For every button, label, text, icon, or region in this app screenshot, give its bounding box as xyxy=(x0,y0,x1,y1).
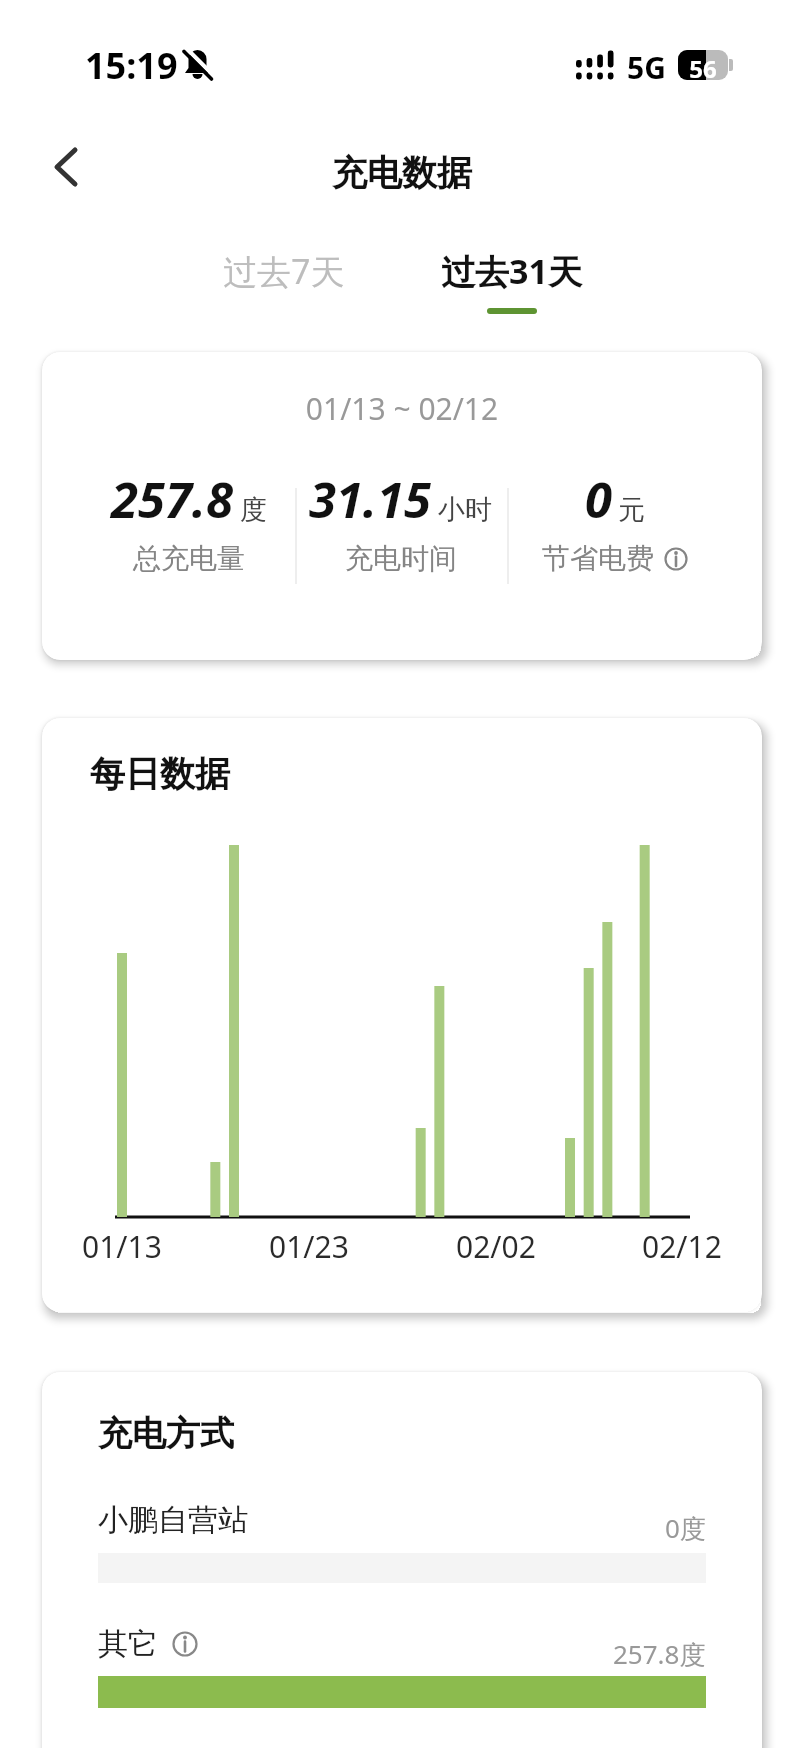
staticText: 度 xyxy=(240,493,267,527)
staticText: 元 xyxy=(618,493,645,527)
staticText: 小时 xyxy=(438,493,492,527)
staticText: 01/13 ~ 02/12 xyxy=(42,388,762,429)
staticText: 过去7天 xyxy=(223,248,345,294)
button[interactable]: 过去31天 xyxy=(441,248,582,314)
staticText: 31.15 xyxy=(309,466,432,533)
staticText: 充电时间 xyxy=(345,541,457,576)
staticText: 02/12 xyxy=(642,1226,722,1267)
staticText: 15:19 xyxy=(85,41,178,90)
button[interactable] xyxy=(664,547,688,571)
staticText: 小鹏自营站 xyxy=(98,1501,248,1539)
staticText: 充电数据 xyxy=(0,151,804,195)
staticText: 充电方式 xyxy=(98,1412,234,1455)
staticText: 节省电费 xyxy=(542,541,654,576)
button[interactable] xyxy=(172,1631,198,1657)
button[interactable] xyxy=(38,134,94,200)
staticText: 257.8 xyxy=(111,466,234,533)
staticText: 01/13 xyxy=(82,1226,162,1267)
staticText: 257.8度 xyxy=(613,1636,706,1672)
staticText: 02/02 xyxy=(456,1226,536,1267)
staticText: 01/23 xyxy=(269,1226,349,1267)
staticText: 0 xyxy=(585,466,612,533)
button[interactable]: 过去7天 xyxy=(223,248,345,294)
staticText: 5G xyxy=(627,47,666,88)
staticText: 56 xyxy=(678,52,728,85)
staticText: 每日数据 xyxy=(90,752,230,796)
staticText: 总充电量 xyxy=(133,541,245,576)
staticText: 其它 xyxy=(98,1625,158,1663)
staticText: 0度 xyxy=(665,1510,706,1546)
staticText: 过去31天 xyxy=(441,248,582,294)
